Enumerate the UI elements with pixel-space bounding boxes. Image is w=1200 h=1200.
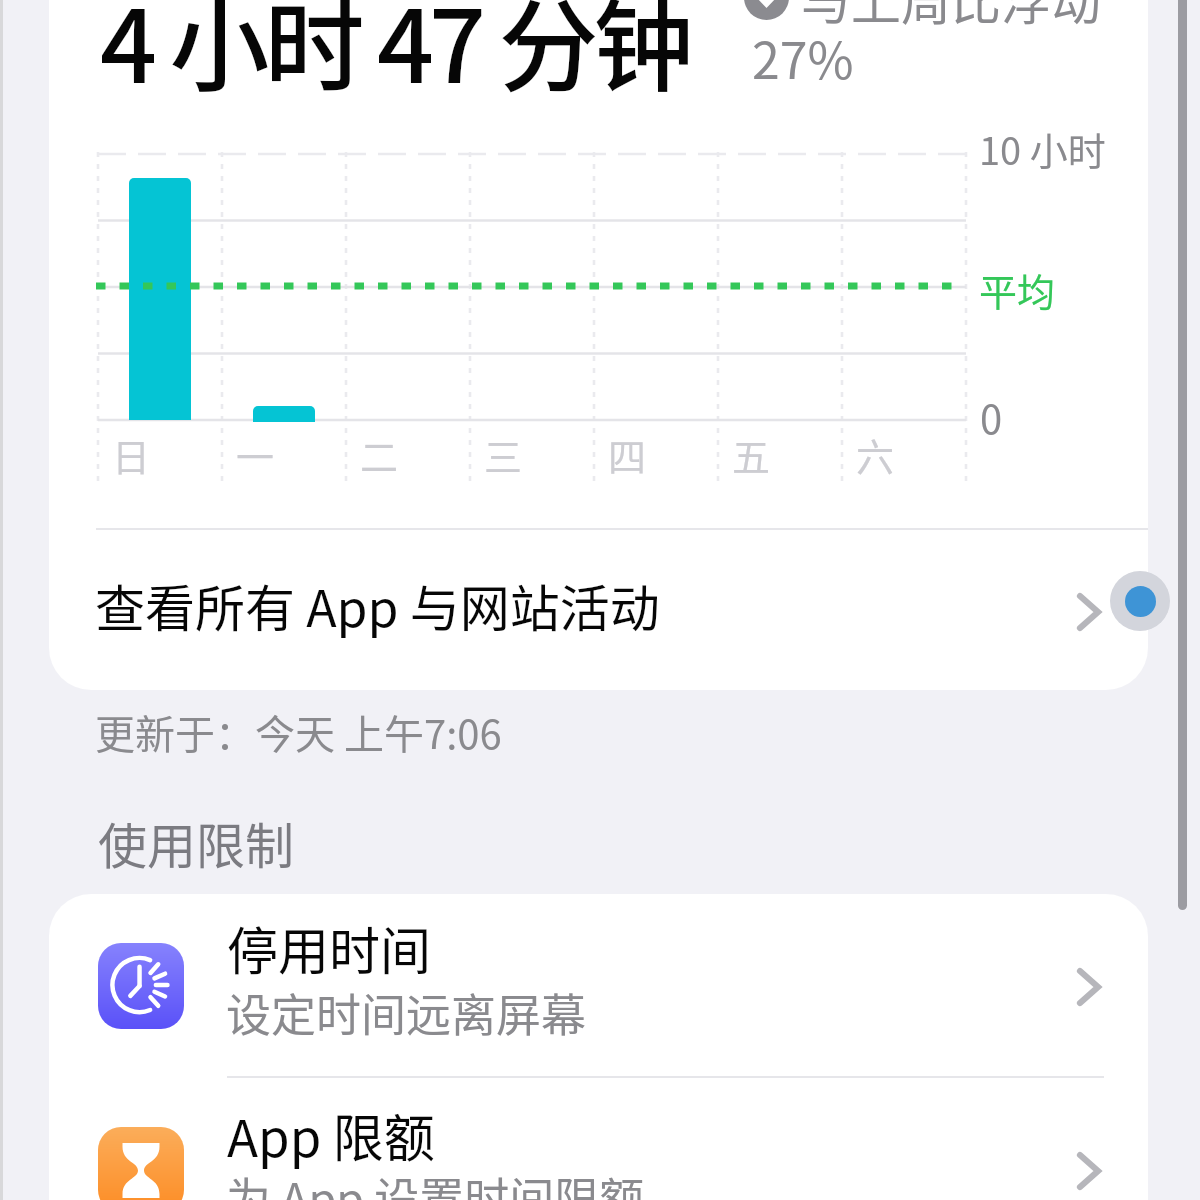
staticText: 平均	[979, 262, 1056, 317]
staticText: 四	[608, 427, 647, 482]
button[interactable]: Downtime	[49, 894, 1148, 1078]
other: App Limits	[98, 1127, 184, 1200]
staticText: 使用限制	[98, 807, 295, 878]
staticText: 二	[360, 427, 399, 482]
staticText: 与上周比浮动	[801, 0, 1101, 34]
other: Downtime	[98, 943, 184, 1029]
staticText: 10 小时	[979, 121, 1106, 176]
staticText: 27%	[752, 21, 854, 93]
staticText: 一	[236, 427, 275, 482]
staticText: App 限额	[227, 1098, 435, 1172]
staticText: 三	[484, 427, 523, 482]
button[interactable]: 查看所有 App 与网站活动	[49, 530, 1148, 690]
staticText: 停用时间	[227, 911, 432, 985]
staticText: 为 App 设置时间限额	[226, 1164, 645, 1200]
staticText: 日	[112, 427, 151, 482]
staticText: 0	[980, 388, 1003, 446]
staticText: 六	[856, 427, 895, 482]
staticText: 五	[732, 427, 771, 482]
button[interactable]: App Limits	[49, 1078, 1148, 1200]
staticText: 查看所有 App 与网站活动	[95, 569, 660, 641]
staticText: 设定时间远离屏幕	[226, 980, 587, 1045]
staticText: 更新于：今天 上午7:06	[95, 703, 502, 761]
staticText: 4 小时 47 分钟	[100, 0, 689, 112]
